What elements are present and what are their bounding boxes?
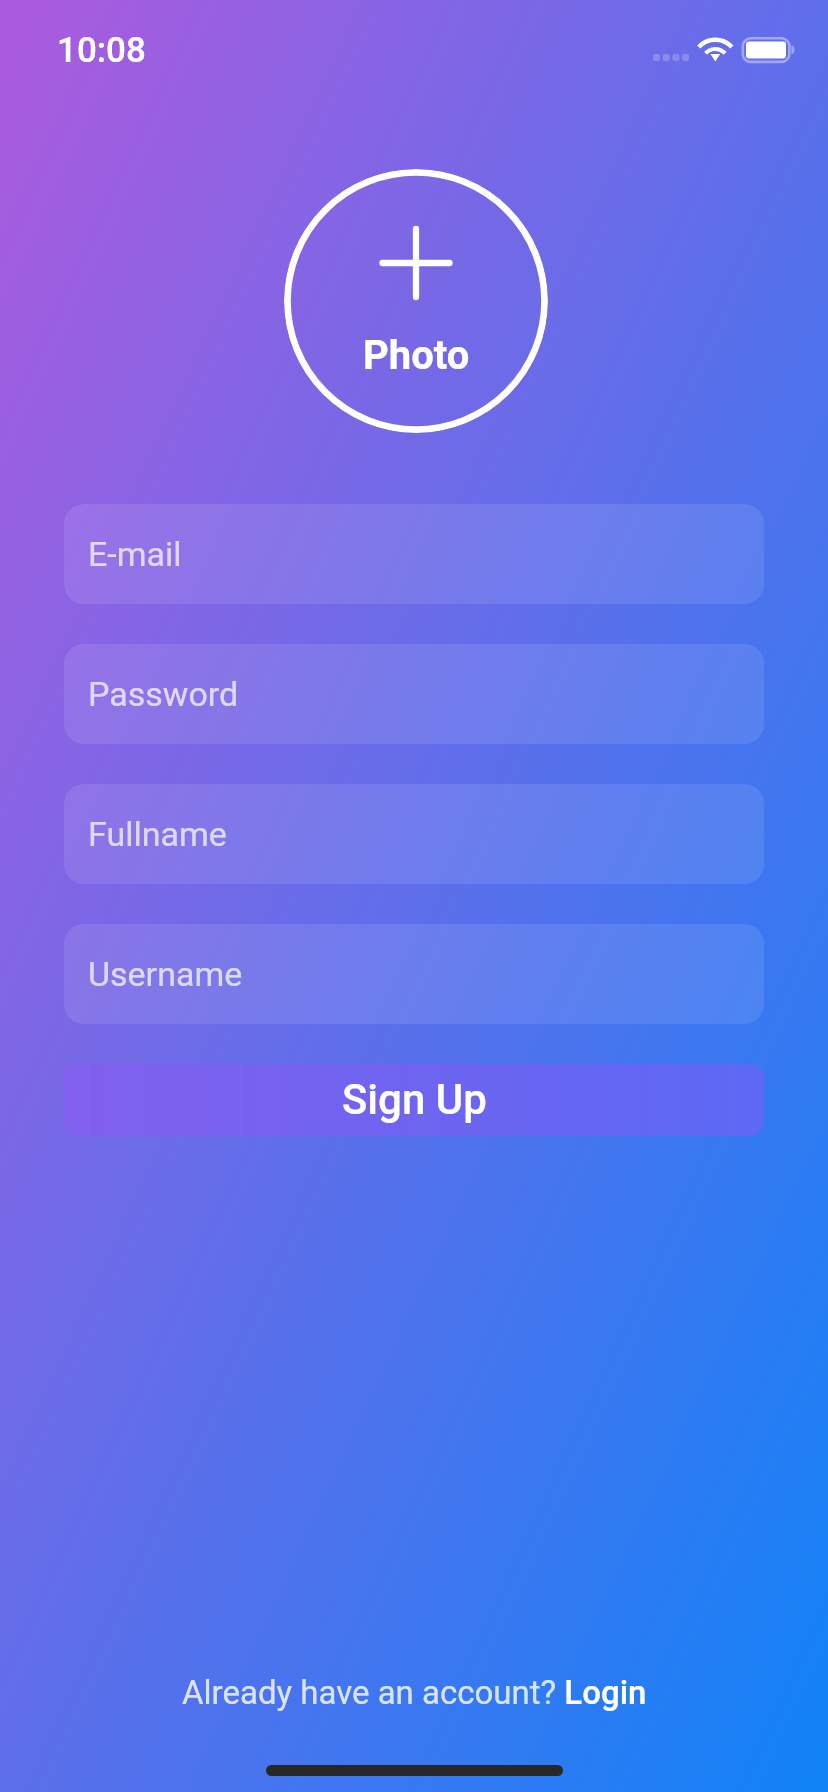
button[interactable]: Add photo <box>284 169 548 433</box>
button[interactable]: Already have an account? Login <box>182 1673 647 1712</box>
button[interactable]: Fullname <box>64 784 764 884</box>
staticText: Fullname <box>88 814 227 854</box>
button[interactable]: Username <box>64 924 764 1024</box>
button[interactable]: E-mail <box>64 504 764 604</box>
staticText: 10:08 <box>57 30 146 71</box>
button[interactable]: Sign Up <box>64 1064 764 1136</box>
staticText: Password <box>88 674 239 714</box>
staticText: Already have an account? Login <box>182 1673 647 1712</box>
staticText: Photo <box>363 332 470 379</box>
staticText: Username <box>88 954 243 994</box>
button[interactable]: Password <box>64 644 764 744</box>
staticText: E-mail <box>88 534 182 574</box>
staticText: Sign Up <box>342 1075 487 1124</box>
